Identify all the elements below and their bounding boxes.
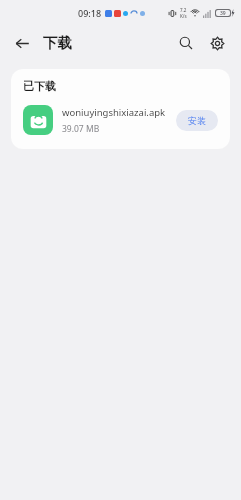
staticText: 下载 xyxy=(43,34,72,52)
button[interactable]: 安装 xyxy=(176,110,218,131)
button[interactable]: Back xyxy=(8,29,36,57)
staticText: 安装 xyxy=(188,115,206,126)
staticText: 39 xyxy=(220,10,226,16)
staticText: 39.07 MB xyxy=(62,123,100,135)
button[interactable]: woniuyingshixiazai.apk xyxy=(11,103,230,137)
staticText: 已下载 xyxy=(23,79,56,93)
staticText: woniuyingshixiazai.apk xyxy=(62,106,166,119)
staticText: K/s xyxy=(180,13,187,19)
staticText: 09:18 xyxy=(78,7,102,19)
button[interactable]: Settings xyxy=(203,29,231,57)
staticText: 7.2 xyxy=(180,7,187,13)
button[interactable]: Search xyxy=(172,29,200,57)
